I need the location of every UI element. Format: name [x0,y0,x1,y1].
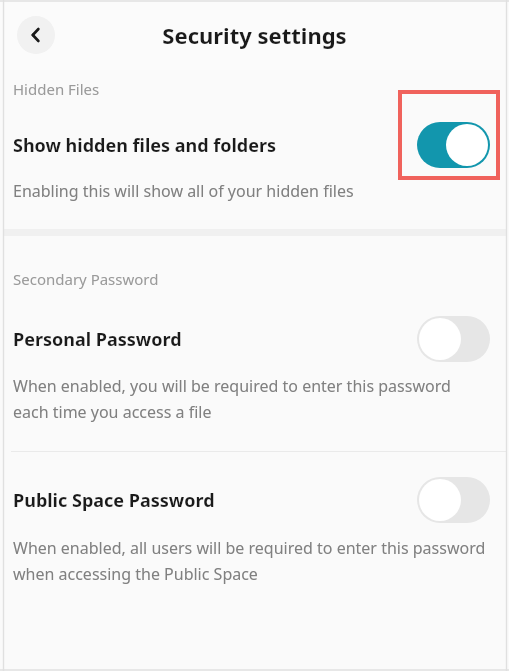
staticText: Personal Password [13,327,417,352]
button[interactable]: Toggle off [417,316,490,362]
button[interactable]: Personal Password [0,313,509,365]
button[interactable]: Public Space Password [0,474,509,526]
staticText: Secondary Password [13,269,159,289]
staticText: Public Space Password [13,488,417,513]
staticText: When enabled, all users will be required… [13,537,495,585]
button[interactable]: Back [17,16,55,54]
staticText: Hidden Files [13,79,100,99]
staticText: Show hidden files and folders [13,133,417,158]
staticText: Enabling this will show all of your hidd… [13,180,354,202]
staticText: Security settings [162,20,347,50]
button[interactable]: Toggle on [417,122,490,168]
staticText: When enabled, you will be required to en… [13,375,489,423]
button[interactable]: Show hidden files and folders [0,119,509,171]
button[interactable]: Toggle off [417,477,490,523]
